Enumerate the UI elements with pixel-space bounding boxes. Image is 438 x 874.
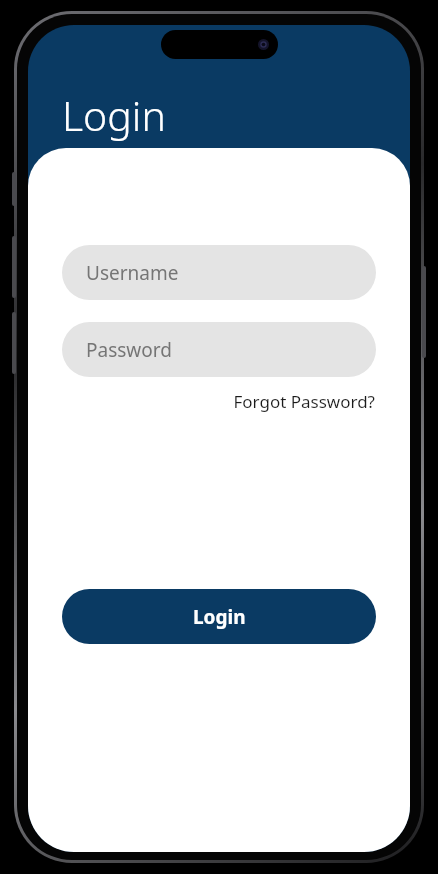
button[interactable]: Login bbox=[62, 589, 376, 644]
staticText: Password bbox=[86, 337, 172, 363]
button[interactable]: Username bbox=[62, 245, 376, 300]
staticText: Login bbox=[193, 604, 246, 630]
staticText: Username bbox=[86, 260, 179, 286]
staticText: Login bbox=[62, 87, 166, 143]
button[interactable]: Password bbox=[62, 322, 376, 377]
button[interactable]: Forgot Password? bbox=[231, 386, 377, 417]
staticText: Forgot Password? bbox=[233, 390, 375, 413]
